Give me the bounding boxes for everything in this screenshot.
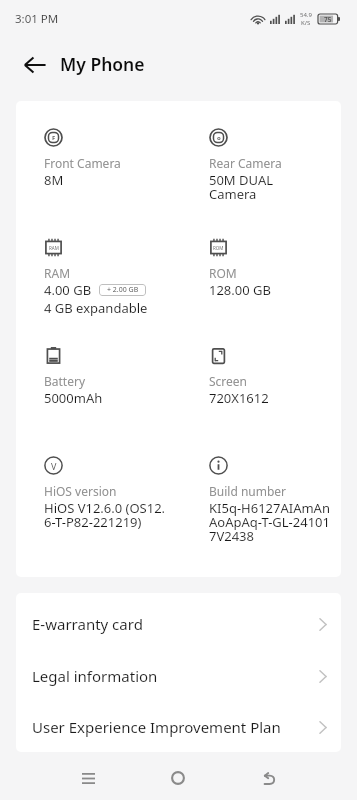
- staticText: V: [51, 460, 57, 472]
- staticText: 4 GB expandable: [44, 299, 148, 317]
- button[interactable]: E-warranty card: [16, 598, 341, 650]
- staticText: o: [217, 134, 221, 142]
- staticText: 75: [324, 15, 332, 24]
- button[interactable]: Recent apps: [44, 756, 133, 800]
- staticText: 3:01 PM: [15, 11, 59, 27]
- staticText: 5000mAh: [44, 389, 103, 407]
- staticText: My Phone: [60, 52, 145, 76]
- staticText: F: [52, 134, 56, 142]
- staticText: 50M DUAL Camera: [209, 171, 274, 203]
- staticText: Battery: [44, 373, 86, 389]
- button[interactable]: Legal information: [16, 650, 341, 702]
- staticText: E-warranty card: [32, 614, 143, 634]
- staticText: Rear Camera: [209, 155, 282, 171]
- button[interactable]: Back: [223, 756, 313, 800]
- staticText: K/S: [301, 19, 311, 27]
- staticText: 720X1612: [209, 389, 269, 407]
- staticText: HiOS V12.6.0 (OS12. 6-T-P82-221219): [44, 499, 166, 531]
- staticText: Build number: [209, 483, 287, 499]
- staticText: 8M: [44, 171, 64, 189]
- staticText: HiOS version: [44, 483, 117, 499]
- staticText: ROM: [213, 245, 224, 251]
- staticText: Legal information: [32, 666, 158, 686]
- staticText: Screen: [209, 373, 248, 389]
- staticText: KI5q-H6127AIAmAn AoApAq-T-GL-24101 7V243…: [209, 499, 330, 545]
- staticText: User Experience Improvement Plan: [32, 717, 281, 737]
- staticText: 4.00 GB: [44, 281, 92, 299]
- staticText: ROM: [209, 265, 237, 281]
- staticText: RAM: [49, 245, 59, 251]
- button[interactable]: Back: [15, 46, 55, 86]
- staticText: + 2.00 GB: [107, 285, 139, 295]
- staticText: RAM: [44, 265, 71, 281]
- staticText: 54.9: [300, 11, 312, 19]
- staticText: 128.00 GB: [209, 281, 271, 299]
- button[interactable]: User Experience Improvement Plan: [16, 702, 341, 752]
- button[interactable]: Home: [133, 756, 223, 800]
- staticText: Front Camera: [44, 155, 121, 171]
